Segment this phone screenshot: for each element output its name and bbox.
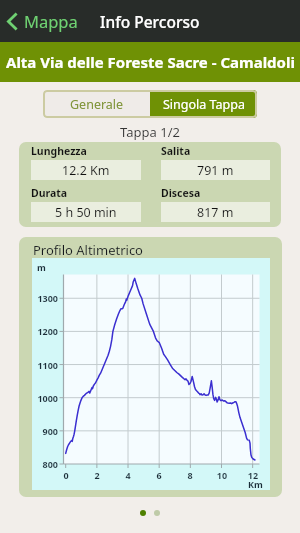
staticText: 12.2 Km xyxy=(62,162,110,179)
staticText: Durata xyxy=(31,186,68,200)
staticText: Generale xyxy=(70,96,124,113)
staticText: 800 xyxy=(37,458,58,470)
button[interactable]: Singola Tappa xyxy=(150,90,257,118)
staticText: 5 h 50 min xyxy=(55,204,117,221)
staticText: Salita xyxy=(161,144,191,158)
staticText: Profilo Altimetrico xyxy=(33,241,143,259)
staticText: m xyxy=(37,261,46,273)
staticText: 2 xyxy=(89,469,105,481)
staticText: Alta Via delle Foreste Sacre - Camaldoli xyxy=(6,52,295,72)
staticText: 900 xyxy=(37,425,58,437)
button[interactable]: Mappa xyxy=(0,0,88,42)
staticText: 4 xyxy=(120,469,136,481)
staticText: Discesa xyxy=(161,186,201,200)
staticText: 12 xyxy=(245,469,261,481)
staticText: Info Percorso xyxy=(100,11,200,32)
staticText: 1100 xyxy=(37,359,58,371)
staticText: 791 m xyxy=(197,162,234,179)
staticText: 8 xyxy=(182,469,198,481)
staticText: 1300 xyxy=(37,292,58,304)
staticText: 1200 xyxy=(37,325,58,337)
staticText: 10 xyxy=(214,469,230,481)
staticText: 0 xyxy=(58,469,74,481)
staticText: Tappa 1/2 xyxy=(0,123,300,141)
button[interactable]: Generale xyxy=(43,90,150,118)
staticText: Km xyxy=(248,478,263,490)
staticText: 6 xyxy=(151,469,167,481)
staticText: Singola Tappa xyxy=(163,96,245,113)
staticText: Lunghezza xyxy=(31,144,87,158)
staticText: Mappa xyxy=(24,10,78,32)
staticText: 1000 xyxy=(37,392,58,404)
staticText: 817 m xyxy=(197,204,234,221)
